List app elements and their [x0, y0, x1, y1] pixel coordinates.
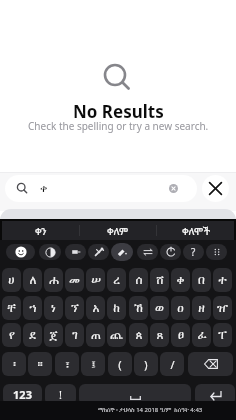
staticText: ፣: [65, 359, 70, 370]
button[interactable]: ኸ: [129, 296, 148, 320]
staticText: ጠ: [91, 329, 101, 341]
button[interactable]: /: [160, 352, 184, 376]
button[interactable]: ደ: [23, 323, 42, 347]
staticText: በ: [198, 274, 205, 286]
button[interactable]: Theme: [39, 244, 61, 260]
button[interactable]: ከ: [107, 296, 126, 320]
button[interactable]: ወ: [150, 296, 169, 320]
staticText: የ: [9, 329, 15, 341]
button[interactable]: Undo: [160, 244, 181, 260]
staticText: ቀለሞች: [182, 224, 210, 238]
staticText: ሐ: [49, 274, 59, 286]
staticText: ጀ: [49, 329, 58, 341]
staticText: ወ: [155, 302, 164, 314]
staticText: ): [144, 357, 148, 372]
staticText: ደ: [29, 329, 36, 341]
staticText: ?: [191, 245, 196, 259]
button[interactable]: መ: [65, 268, 84, 292]
staticText: ፡: [13, 359, 16, 370]
button[interactable]: Handwriting: [111, 243, 133, 261]
button[interactable]: ሠ: [86, 268, 105, 292]
button[interactable]: Backspace: [188, 352, 233, 376]
button[interactable]: ): [134, 352, 158, 376]
button[interactable]: ኘ: [65, 296, 84, 320]
button[interactable]: አ: [86, 296, 105, 320]
staticText: ቀ: [40, 183, 48, 194]
staticText: ጸ: [156, 329, 164, 341]
button[interactable]: ኀ: [23, 296, 42, 320]
button[interactable]: በ: [192, 268, 211, 292]
button[interactable]: ሰ: [129, 268, 148, 292]
button[interactable]: Space: [79, 384, 191, 405]
staticText: ኀ: [29, 302, 37, 314]
staticText: ፤: [91, 359, 96, 370]
button[interactable]: ቀለም: [79, 221, 156, 240]
button[interactable]: (: [108, 352, 132, 376]
button[interactable]: Clear text: [169, 184, 178, 193]
staticText: ጨ: [110, 329, 123, 341]
button[interactable]: Switch language: [137, 244, 158, 260]
button[interactable]: ቀ: [5, 175, 197, 202]
staticText: ፀ: [178, 329, 184, 341]
button[interactable]: Smart reply: [88, 244, 109, 260]
staticText: ነ: [51, 302, 56, 314]
button[interactable]: ዠ: [213, 296, 232, 320]
staticText: ።: [37, 359, 43, 370]
button[interactable]: ጨ: [107, 323, 126, 347]
staticText: ቸ: [7, 302, 16, 314]
button[interactable]: ተ: [213, 268, 232, 292]
staticText: ለ: [29, 274, 37, 286]
button[interactable]: ሐ: [44, 268, 63, 292]
button[interactable]: ።: [28, 352, 52, 376]
staticText: ፈ: [197, 329, 207, 341]
staticText: ሸ: [156, 274, 164, 286]
button[interactable]: ጰ: [129, 323, 148, 347]
button[interactable]: ቸ: [2, 296, 21, 320]
staticText: መ: [69, 274, 80, 286]
button[interactable]: ጠ: [86, 323, 105, 347]
button[interactable]: ዐ: [171, 296, 190, 320]
button[interactable]: ፡: [2, 352, 26, 376]
button[interactable]: Stickers: [65, 244, 86, 260]
staticText: ሰ: [135, 274, 143, 286]
staticText: ቀለም: [107, 224, 129, 238]
button[interactable]: Help: [183, 244, 204, 260]
button[interactable]: More options: [206, 244, 227, 260]
staticText: ዠ: [217, 302, 228, 314]
staticText: ገ: [72, 329, 78, 341]
button[interactable]: ጸ: [150, 323, 169, 347]
button[interactable]: ፣: [55, 352, 79, 376]
button[interactable]: ዘ: [192, 296, 211, 320]
button[interactable]: Close search: [202, 175, 229, 202]
staticText: No Results: [73, 100, 164, 120]
button[interactable]: ገ: [65, 323, 84, 347]
button[interactable]: !: [45, 384, 76, 405]
staticText: /: [170, 357, 175, 372]
button[interactable]: ቀን: [2, 221, 79, 240]
button[interactable]: Emoji: [6, 244, 35, 260]
staticText: ኘ: [71, 302, 79, 314]
button[interactable]: ፤: [81, 352, 105, 376]
staticText: ረ: [113, 274, 120, 286]
other: No search results: [97, 55, 133, 91]
staticText: ዐ: [177, 302, 184, 314]
staticText: ከ: [113, 302, 120, 314]
staticText: ዘ: [198, 302, 205, 314]
button[interactable]: ሀ: [2, 268, 21, 292]
button[interactable]: ጀ: [44, 323, 63, 347]
button[interactable]: ቀለሞች: [157, 221, 234, 240]
button[interactable]: ፐ: [213, 323, 232, 347]
button[interactable]: ሸ: [150, 268, 169, 292]
button[interactable]: Enter: [195, 384, 235, 405]
staticText: ሀ: [8, 274, 15, 286]
staticText: !: [59, 387, 62, 402]
staticText: Check the spelling or try a new search.: [28, 119, 209, 133]
button[interactable]: የ: [2, 323, 21, 347]
button[interactable]: ረ: [107, 268, 126, 292]
button[interactable]: ፈ: [192, 323, 211, 347]
button[interactable]: 123: [3, 384, 42, 405]
button[interactable]: ለ: [23, 268, 42, 292]
button[interactable]: ቀ: [171, 268, 190, 292]
button[interactable]: ፀ: [171, 323, 190, 347]
button[interactable]: ነ: [44, 296, 63, 320]
